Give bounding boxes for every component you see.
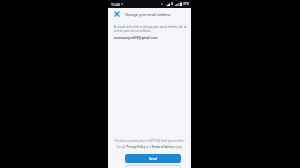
staticText: 11:44 xyxy=(111,2,120,7)
staticText: someoneyork59@gmail.com xyxy=(114,36,158,40)
staticText: This site is protected by reCAPTCHA Ente… xyxy=(114,139,185,148)
button[interactable]: Send xyxy=(125,154,181,163)
staticText: An email with a link to change your emai… xyxy=(114,25,187,33)
staticText: Change your email address xyxy=(125,12,171,17)
button[interactable]: Close xyxy=(113,10,121,18)
staticText: N xyxy=(171,2,174,6)
staticText: Send xyxy=(149,156,158,161)
button[interactable]: Cancel xyxy=(125,165,181,168)
staticText: 47% xyxy=(183,2,189,6)
